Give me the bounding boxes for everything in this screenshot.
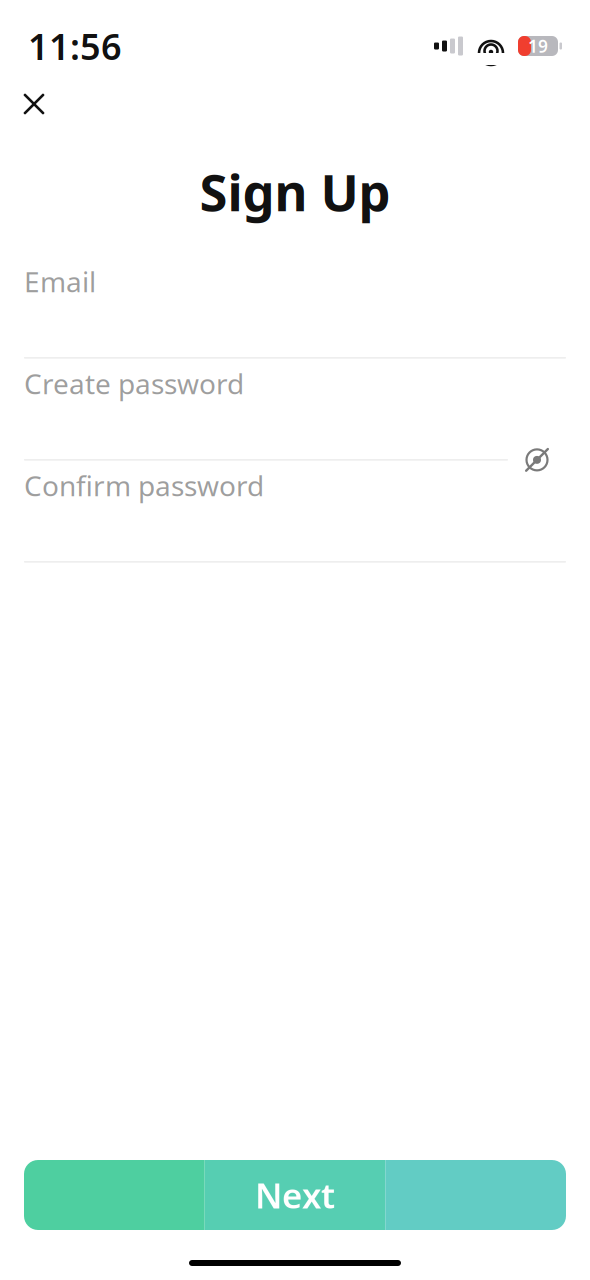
staticText: Email xyxy=(24,263,96,300)
staticText: Create password xyxy=(24,365,244,402)
button[interactable]: Next xyxy=(24,1160,566,1230)
staticText: 19 xyxy=(528,34,548,57)
staticText: Confirm password xyxy=(24,467,264,504)
staticText: 11:56 xyxy=(28,22,122,70)
staticText: Next xyxy=(255,1172,335,1218)
button[interactable]: Show password xyxy=(508,440,566,480)
button[interactable]: Close xyxy=(8,78,60,130)
staticText: Sign Up xyxy=(199,158,390,225)
